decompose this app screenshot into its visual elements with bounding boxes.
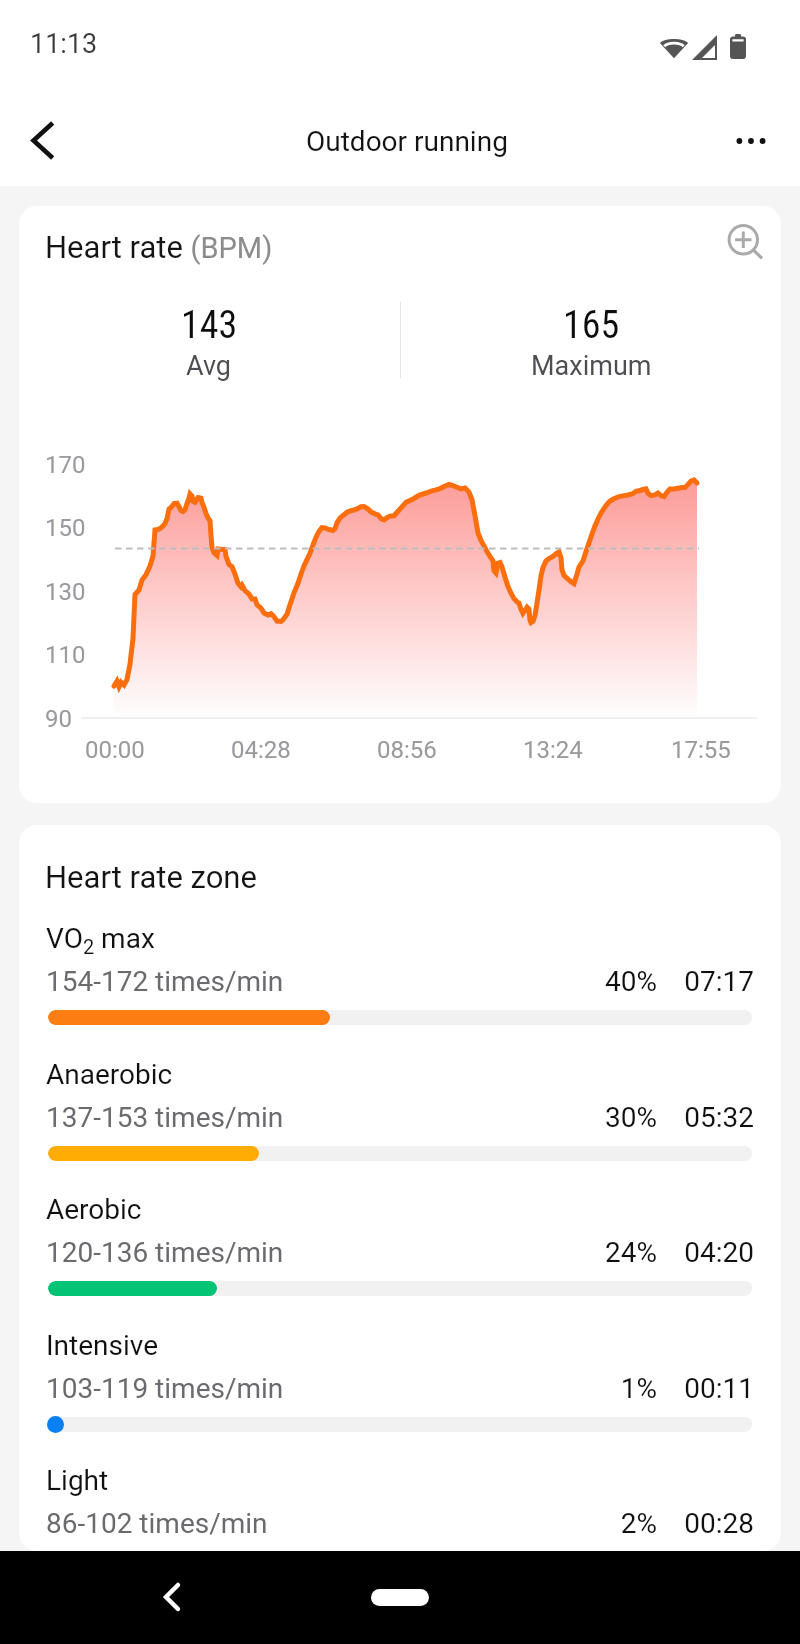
- staticText: 00:11: [668, 1372, 754, 1405]
- staticText: Heart rate zone: [45, 859, 257, 895]
- staticText: 00:28: [668, 1507, 754, 1540]
- staticText: 90: [45, 705, 72, 733]
- staticText: 11:13: [30, 28, 98, 60]
- staticText: 07:17: [668, 965, 754, 998]
- staticText: 1%: [577, 1372, 657, 1405]
- staticText: Light: [46, 1464, 109, 1497]
- staticText: Anaerobic: [46, 1058, 173, 1091]
- staticText: 13:24: [523, 736, 583, 764]
- staticText: 30%: [577, 1101, 657, 1134]
- staticText: Outdoor running: [306, 125, 508, 158]
- staticText: 110: [45, 641, 86, 669]
- staticText: 17:55: [671, 736, 731, 764]
- button[interactable]: Zoom in: [709, 210, 771, 272]
- staticText: Maximum: [531, 350, 652, 382]
- staticText: 00:00: [85, 736, 145, 764]
- button[interactable]: More options: [718, 108, 784, 174]
- staticText: 05:32: [668, 1101, 754, 1134]
- staticText: 120-136 times/min: [46, 1236, 284, 1269]
- staticText: VO2 max: [46, 922, 155, 958]
- staticText: 130: [45, 578, 86, 606]
- staticText: 154-172 times/min: [46, 965, 284, 998]
- staticText: 143: [181, 303, 238, 348]
- staticText: 08:56: [377, 736, 437, 764]
- staticText: 40%: [577, 965, 657, 998]
- staticText: 2%: [577, 1507, 657, 1540]
- staticText: 103-119 times/min: [46, 1372, 284, 1405]
- staticText: Intensive: [46, 1329, 159, 1362]
- staticText: 150: [45, 514, 86, 542]
- staticText: 170: [45, 451, 86, 479]
- button[interactable]: Back: [142, 1567, 202, 1627]
- staticText: 04:28: [231, 736, 291, 764]
- staticText: Avg: [186, 350, 232, 382]
- button[interactable]: Back: [9, 98, 75, 164]
- staticText: 165: [563, 303, 620, 348]
- staticText: 24%: [577, 1236, 657, 1269]
- button[interactable]: Home: [371, 1589, 429, 1606]
- staticText: Heart rate (BPM): [45, 229, 273, 265]
- staticText: 04:20: [668, 1236, 754, 1269]
- staticText: 86-102 times/min: [46, 1507, 268, 1540]
- staticText: Aerobic: [46, 1193, 142, 1226]
- staticText: 137-153 times/min: [46, 1101, 284, 1134]
